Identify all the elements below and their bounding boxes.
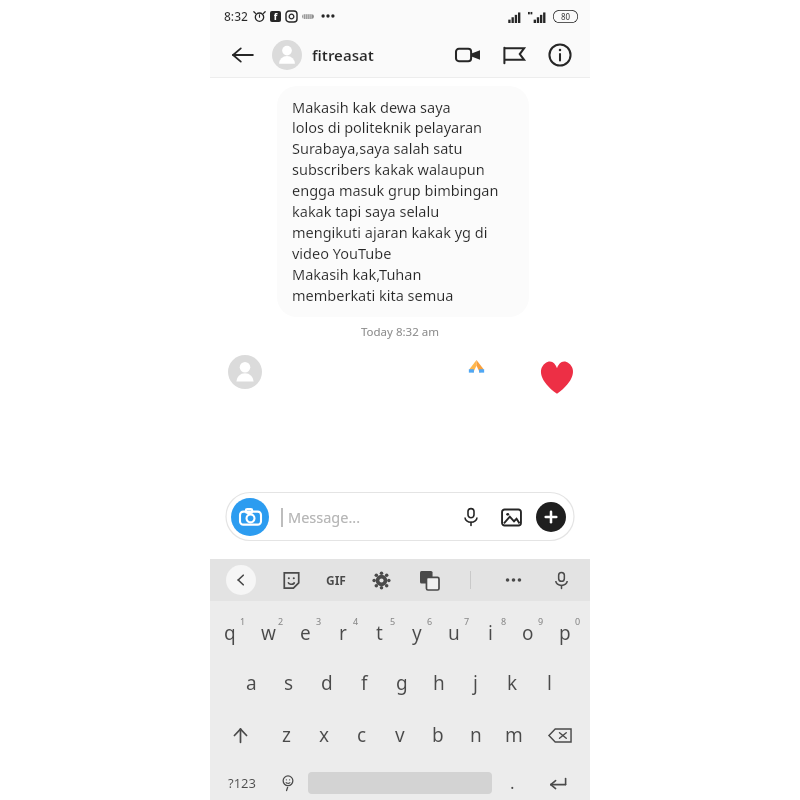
- staticText: f: [361, 670, 368, 696]
- button[interactable]: Settings: [368, 567, 394, 593]
- button[interactable]: Close toolbar: [226, 565, 256, 595]
- button[interactable]: Enter: [532, 765, 584, 800]
- staticText: v: [395, 722, 405, 748]
- button[interactable]: Heart reaction: [535, 355, 579, 399]
- button[interactable]: Makasih kak dewa saya lolos di politekni…: [277, 86, 529, 317]
- button[interactable]: More: [500, 567, 526, 593]
- staticText: t: [376, 620, 383, 646]
- staticText: 8: [501, 615, 507, 627]
- staticText: c: [357, 722, 367, 748]
- staticText: l: [547, 670, 552, 696]
- staticText: g: [396, 670, 408, 696]
- staticText: j: [473, 670, 478, 696]
- staticText: d: [321, 670, 333, 696]
- staticText: Today 8:32 am: [361, 324, 439, 340]
- button[interactable]: Stickers: [278, 567, 304, 593]
- button[interactable]: z: [267, 715, 305, 755]
- staticText: w: [261, 620, 276, 646]
- button[interactable]: g: [383, 662, 420, 704]
- staticText: Message...: [288, 507, 361, 527]
- staticText: ?123: [228, 774, 256, 792]
- staticText: k: [507, 670, 518, 696]
- staticText: 0: [575, 615, 581, 627]
- button[interactable]: v: [381, 715, 419, 755]
- button[interactable]: t: [364, 609, 401, 651]
- staticText: fitreasat: [312, 45, 374, 65]
- button[interactable]: y: [401, 609, 438, 651]
- staticText: 1: [240, 615, 246, 627]
- button[interactable]: Flag: [498, 39, 530, 71]
- button[interactable]: e: [290, 609, 327, 651]
- staticText: u: [448, 620, 460, 646]
- staticText: n: [470, 722, 482, 748]
- button[interactable]: n: [457, 715, 495, 755]
- staticText: 3: [316, 615, 322, 627]
- button[interactable]: x: [305, 715, 343, 755]
- button[interactable]: Voice input: [548, 567, 574, 593]
- staticText: s: [284, 670, 294, 696]
- button[interactable]: u: [438, 609, 475, 651]
- button[interactable]: Translate: [416, 567, 442, 593]
- staticText: .: [510, 771, 515, 794]
- staticText: y: [412, 620, 422, 646]
- staticText: 9: [538, 615, 544, 627]
- button[interactable]: Shift: [214, 715, 267, 755]
- button[interactable]: a: [232, 662, 270, 704]
- button[interactable]: k: [494, 662, 531, 704]
- staticText: o: [522, 620, 534, 646]
- button[interactable]: f: [346, 662, 383, 704]
- staticText: Makasih kak dewa saya lolos di politekni…: [292, 97, 499, 306]
- staticText: h: [433, 670, 445, 696]
- button[interactable]: j: [457, 662, 494, 704]
- button[interactable]: ?123: [216, 765, 268, 800]
- staticText: a: [246, 670, 257, 696]
- button[interactable]: Video call: [452, 39, 484, 71]
- staticText: e: [300, 620, 311, 646]
- button[interactable]: i: [475, 609, 512, 651]
- button[interactable]: p: [549, 609, 586, 651]
- staticText: 80: [561, 11, 571, 22]
- button[interactable]: Camera: [226, 493, 574, 541]
- button[interactable]: o: [512, 609, 549, 651]
- button[interactable]: More options: [536, 502, 566, 532]
- button[interactable]: Profile picture: [272, 40, 302, 70]
- staticText: GIF: [326, 572, 346, 588]
- button[interactable]: q: [214, 609, 252, 651]
- staticText: p: [559, 620, 571, 646]
- button[interactable]: .: [492, 765, 532, 800]
- staticText: 8:32: [224, 8, 248, 24]
- staticText: 6: [427, 615, 433, 627]
- button[interactable]: m: [495, 715, 533, 755]
- button[interactable]: fitreasat: [312, 45, 374, 65]
- button[interactable]: c: [343, 715, 381, 755]
- button[interactable]: w: [252, 609, 290, 651]
- button[interactable]: Backspace: [533, 715, 586, 755]
- staticText: z: [282, 722, 291, 748]
- button[interactable]: r: [327, 609, 364, 651]
- staticText: r: [339, 620, 347, 646]
- button[interactable]: Emoji: [268, 765, 308, 800]
- staticText: f: [274, 11, 278, 22]
- staticText: 5: [390, 615, 396, 627]
- button[interactable]: Back: [226, 38, 260, 72]
- button[interactable]: b: [419, 715, 457, 755]
- button[interactable]: Gallery: [496, 502, 526, 532]
- staticText: 4: [353, 615, 359, 627]
- staticText: 7: [464, 615, 470, 627]
- staticText: 2: [278, 615, 284, 627]
- staticText: m: [505, 722, 523, 748]
- staticText: q: [224, 620, 236, 646]
- button[interactable]: Info: [544, 39, 576, 71]
- button[interactable]: Sender avatar: [228, 355, 262, 389]
- button[interactable]: s: [270, 662, 308, 704]
- button[interactable]: h: [420, 662, 457, 704]
- button[interactable]: Camera: [231, 498, 269, 536]
- button[interactable]: Voice message: [456, 502, 486, 532]
- staticText: i: [488, 620, 493, 646]
- button[interactable]: GIF: [326, 572, 346, 588]
- staticText: x: [319, 722, 330, 748]
- button[interactable]: d: [308, 662, 346, 704]
- button[interactable]: l: [531, 662, 568, 704]
- staticText: b: [432, 722, 444, 748]
